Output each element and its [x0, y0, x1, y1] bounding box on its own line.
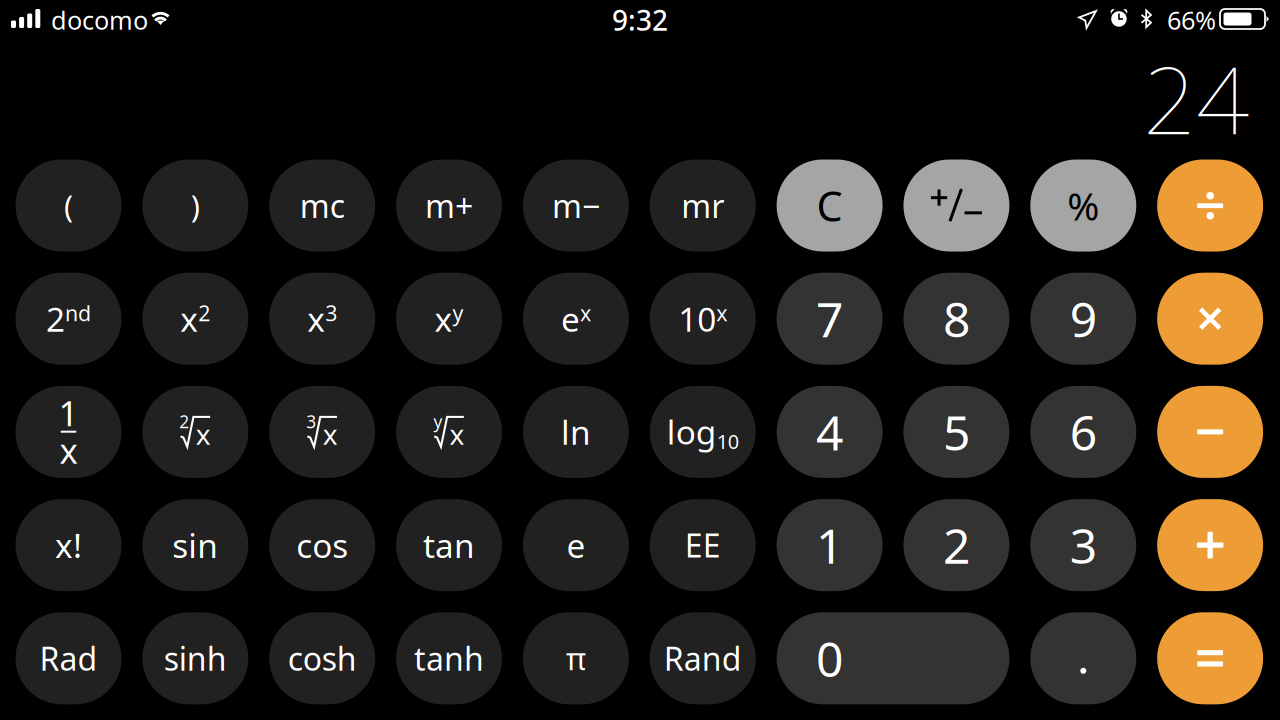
button[interactable]: Random — [650, 612, 756, 704]
staticText: 1 — [58, 390, 78, 436]
staticText: x — [323, 415, 338, 452]
staticText: ex — [561, 297, 591, 341]
staticText: Rand — [664, 637, 742, 680]
staticText: 9 — [1070, 287, 1097, 350]
staticText: e — [566, 523, 585, 567]
staticText: 2nd — [46, 297, 91, 341]
button[interactable]: 5 — [903, 386, 1009, 478]
button[interactable]: One over x — [15, 386, 121, 478]
staticText: ln — [561, 410, 591, 454]
button[interactable]: Close parenthesis — [142, 159, 248, 251]
button[interactable]: Sine — [142, 499, 248, 591]
button[interactable]: 1 — [777, 499, 883, 591]
button[interactable]: Memory add — [396, 159, 502, 251]
staticText: EE — [685, 524, 721, 566]
staticText: cosh — [288, 637, 357, 680]
button[interactable]: 3 — [1030, 499, 1136, 591]
button[interactable]: Pi — [523, 612, 629, 704]
staticText: 8 — [943, 287, 970, 350]
staticText: % — [1067, 180, 1099, 231]
staticText: 66% — [1167, 3, 1216, 37]
staticText: 24 — [1143, 36, 1249, 160]
staticText: x — [196, 415, 211, 452]
staticText: m+ — [425, 184, 473, 227]
button[interactable]: Cosine — [269, 499, 375, 591]
staticText: 6 — [1070, 400, 1097, 464]
staticText: 7 — [816, 287, 843, 350]
staticText: 3 — [1070, 513, 1097, 577]
staticText: ( — [64, 185, 73, 226]
button[interactable]: Factorial — [15, 499, 121, 591]
button[interactable]: Logarithm base 10 — [650, 386, 756, 478]
button[interactable]: Divide — [1157, 159, 1263, 251]
button[interactable]: Add — [1157, 499, 1263, 591]
button[interactable]: Memory clear — [269, 159, 375, 251]
staticText: cos — [296, 523, 348, 567]
button[interactable]: Hyperbolic tangent — [396, 612, 502, 704]
button[interactable]: 6 — [1030, 386, 1136, 478]
staticText: x3 — [307, 297, 337, 341]
button[interactable]: 10 to the power x — [650, 273, 756, 365]
button[interactable]: Second functions — [15, 273, 121, 365]
staticText: 2 — [943, 513, 970, 577]
staticText: x — [59, 427, 77, 473]
button[interactable]: x to the power y — [396, 273, 502, 365]
staticText: xy — [434, 297, 463, 341]
staticText: x! — [55, 523, 82, 567]
button[interactable]: 2 — [903, 499, 1009, 591]
staticText: sinh — [164, 637, 227, 680]
button[interactable]: Tangent — [396, 499, 502, 591]
button[interactable]: Memory subtract — [523, 159, 629, 251]
button[interactable]: y root of x — [396, 386, 502, 478]
button[interactable]: e — [523, 499, 629, 591]
staticText: sin — [172, 523, 218, 567]
staticText: m− — [552, 184, 600, 227]
button[interactable]: x squared — [142, 273, 248, 365]
button[interactable]: Clear — [777, 159, 883, 251]
staticText: C — [817, 178, 843, 233]
button[interactable]: x cubed — [269, 273, 375, 365]
button[interactable]: 0 — [777, 612, 1009, 704]
staticText: mc — [300, 184, 345, 227]
button[interactable]: Equals — [1157, 612, 1263, 704]
staticText: Rad — [39, 637, 97, 680]
staticText: mr — [681, 184, 724, 227]
staticText: 3 — [306, 410, 316, 433]
staticText: 9:32 — [612, 1, 668, 39]
staticText: 2 — [179, 410, 189, 433]
staticText: 10x — [678, 297, 727, 341]
staticText: 5 — [943, 400, 970, 464]
button[interactable]: Cube root of x — [269, 386, 375, 478]
button[interactable]: Open parenthesis — [15, 159, 121, 251]
staticText: log10 — [667, 409, 739, 454]
button[interactable]: Natural logarithm — [523, 386, 629, 478]
staticText: tan — [423, 523, 475, 567]
staticText: 1 — [816, 513, 843, 577]
staticText: 0 — [816, 626, 843, 690]
button[interactable]: E E — [650, 499, 756, 591]
button[interactable]: Subtract — [1157, 386, 1263, 478]
staticText: y — [433, 410, 442, 433]
staticText: docomo — [51, 3, 148, 37]
button[interactable]: Decimal point — [1030, 612, 1136, 704]
button[interactable]: Plus minus — [903, 159, 1009, 251]
button[interactable]: 4 — [777, 386, 883, 478]
staticText: tanh — [414, 637, 484, 680]
button[interactable]: e to the power x — [523, 273, 629, 365]
button[interactable]: Hyperbolic cosine — [269, 612, 375, 704]
button[interactable]: Square root of x — [142, 386, 248, 478]
button[interactable]: 8 — [903, 273, 1009, 365]
button[interactable]: Multiply — [1157, 273, 1263, 365]
staticText: 4 — [816, 400, 843, 464]
button[interactable]: Hyperbolic sine — [142, 612, 248, 704]
button[interactable]: Percent — [1030, 159, 1136, 251]
button[interactable]: Radians — [15, 612, 121, 704]
staticText: x2 — [180, 297, 210, 341]
staticText: x — [449, 415, 464, 452]
staticText: ) — [191, 185, 200, 226]
button[interactable]: 9 — [1030, 273, 1136, 365]
button[interactable]: 7 — [777, 273, 883, 365]
staticText: π — [566, 638, 586, 679]
button[interactable]: Memory recall — [650, 159, 756, 251]
